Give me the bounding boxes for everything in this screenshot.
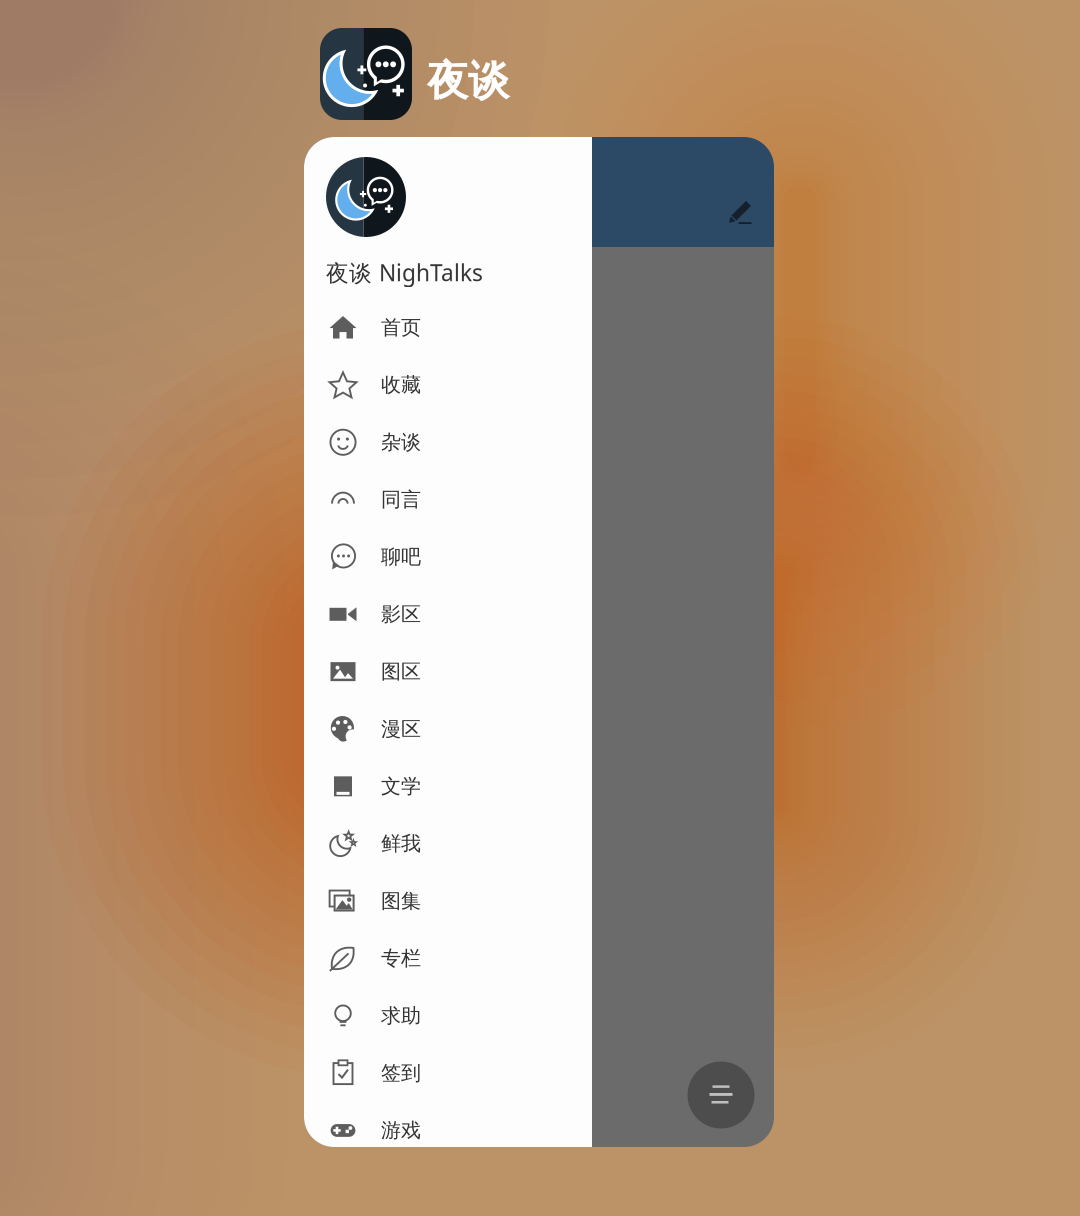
button[interactable]: 图区 (304, 643, 592, 700)
staticText: 图区 (381, 659, 421, 684)
button[interactable]: 聊吧 (304, 528, 592, 586)
button[interactable]: 收藏 (304, 356, 592, 414)
button[interactable]: 求助 (304, 987, 592, 1044)
button[interactable]: 专栏 (304, 930, 592, 987)
staticText: 签到 (381, 1060, 421, 1086)
staticText: 影区 (381, 602, 421, 627)
button[interactable]: 首页 (304, 299, 592, 356)
button[interactable]: 影区 (304, 586, 592, 643)
staticText: 夜谈 NighTalks (326, 257, 483, 288)
staticText: 鲜我 (381, 831, 421, 856)
button[interactable]: 签到 (304, 1044, 592, 1102)
button[interactable]: 漫区 (304, 700, 592, 758)
staticText: 杂谈 (381, 430, 421, 455)
button[interactable]: 文学 (304, 758, 592, 815)
button[interactable]: 图集 (304, 872, 592, 930)
staticText: 游戏 (381, 1118, 421, 1143)
staticText: 图集 (381, 888, 421, 914)
staticText: 文学 (381, 774, 421, 799)
button[interactable]: 鲜我 (304, 815, 592, 872)
staticText: 同言 (381, 487, 421, 512)
staticText: 首页 (381, 315, 421, 340)
button[interactable]: 游戏 (304, 1102, 592, 1159)
button[interactable]: Filter (687, 1061, 754, 1128)
staticText: 夜谈 (427, 55, 509, 107)
staticText: 专栏 (381, 946, 421, 971)
staticText: 聊吧 (381, 544, 421, 570)
staticText: 求助 (381, 1003, 421, 1028)
button[interactable]: 同言 (304, 471, 592, 528)
staticText: 收藏 (381, 372, 421, 397)
button[interactable]: 杂谈 (304, 414, 592, 471)
staticText: 漫区 (381, 716, 421, 742)
